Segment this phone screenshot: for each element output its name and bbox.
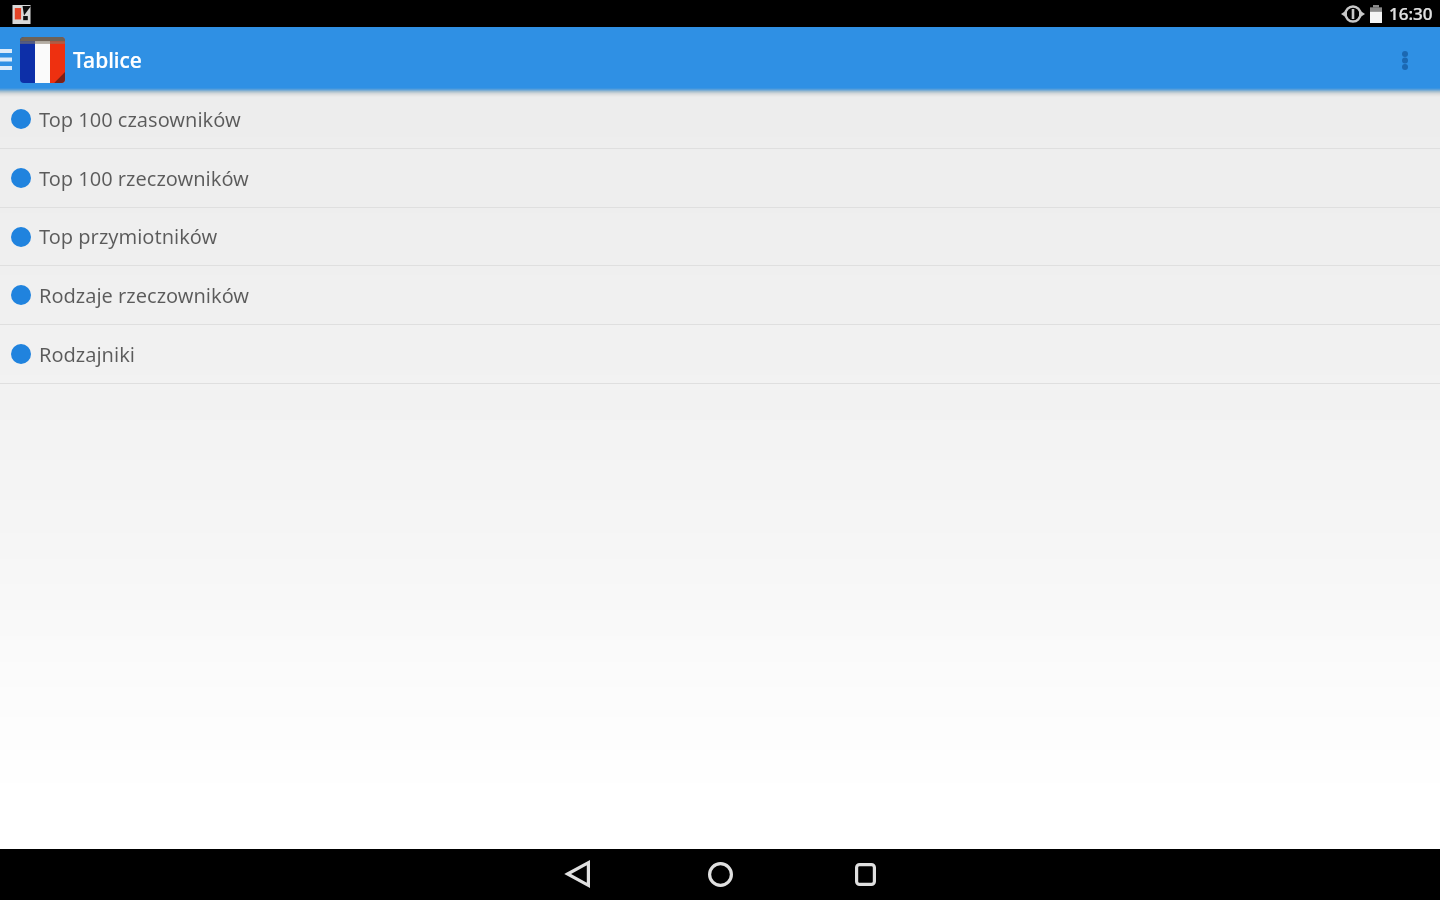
staticText: Tablice — [73, 46, 142, 75]
button[interactable]: Home — [697, 851, 743, 897]
staticText: Rodzajniki — [39, 341, 135, 368]
button[interactable]: Recent apps — [842, 851, 888, 897]
button[interactable]: Rodzajniki — [0, 325, 1440, 383]
button[interactable]: Top przymiotników — [0, 208, 1440, 265]
button[interactable]: Rodzaje rzeczowników — [0, 266, 1440, 324]
button[interactable]: Back — [555, 851, 601, 897]
button[interactable]: Top 100 rzeczowników — [0, 149, 1440, 207]
button[interactable]: Top 100 czasowników — [0, 90, 1440, 148]
staticText: Top przymiotników — [39, 223, 218, 250]
staticText: Top 100 rzeczowników — [39, 165, 249, 192]
button[interactable]: More options — [1379, 27, 1431, 88]
staticText: Top 100 czasowników — [39, 106, 241, 133]
staticText: 16:30 — [1389, 2, 1433, 25]
button[interactable]: Open navigation drawer — [0, 27, 14, 88]
staticText: Rodzaje rzeczowników — [39, 282, 250, 309]
